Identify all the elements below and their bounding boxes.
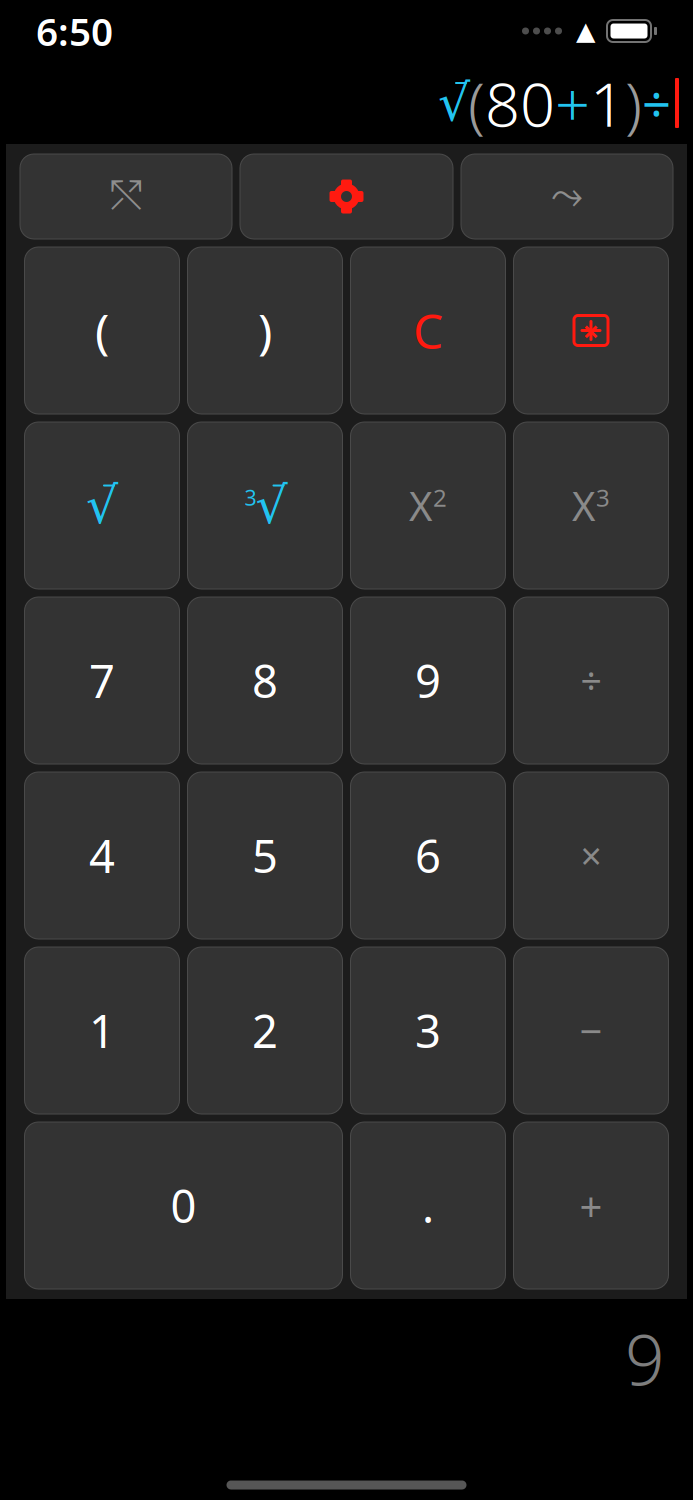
button[interactable]: Clear xyxy=(350,247,505,414)
staticText: ( xyxy=(468,62,485,144)
staticText: 80 xyxy=(485,62,555,144)
staticText: 9 xyxy=(625,1312,665,1405)
staticText: 2 xyxy=(433,482,447,513)
button[interactable]: 1 xyxy=(24,947,179,1114)
staticText: 7 xyxy=(89,650,115,711)
staticText: ÷ xyxy=(642,69,671,137)
button[interactable]: Open parenthesis xyxy=(24,247,179,414)
button[interactable]: 9 xyxy=(350,597,505,764)
button[interactable]: 7 xyxy=(24,597,179,764)
button[interactable]: 4 xyxy=(24,772,179,939)
staticText: 6 xyxy=(415,825,441,886)
staticText: ⤳ xyxy=(551,177,583,216)
button[interactable]: Decimal point xyxy=(350,1122,505,1289)
button[interactable]: Plus xyxy=(513,1122,668,1289)
staticText: . xyxy=(422,1175,434,1236)
button[interactable]: Redo xyxy=(461,154,673,239)
button[interactable]: Square root xyxy=(24,422,179,589)
staticText: 0 xyxy=(170,1175,196,1236)
staticText: 2 xyxy=(252,1000,278,1061)
staticText: 3 xyxy=(596,482,610,513)
staticText: − xyxy=(579,1004,602,1057)
button[interactable]: Minus xyxy=(513,947,668,1114)
button[interactable]: 2 xyxy=(187,947,342,1114)
staticText: ( xyxy=(95,299,109,362)
staticText: √ xyxy=(255,477,287,534)
button[interactable]: Close parenthesis xyxy=(187,247,342,414)
button[interactable]: Divide xyxy=(513,597,668,764)
staticText: + xyxy=(579,1179,602,1232)
staticText: 1 xyxy=(89,1000,115,1061)
staticText: 1 xyxy=(590,62,625,144)
staticText: X xyxy=(409,479,432,532)
button[interactable]: 8 xyxy=(187,597,342,764)
staticText: √ xyxy=(86,477,118,534)
button[interactable]: Delete xyxy=(513,247,668,414)
staticText: 5 xyxy=(252,825,278,886)
staticText: 3 xyxy=(415,1000,441,1061)
staticText: + xyxy=(555,62,590,144)
staticText: 6:50 xyxy=(36,5,113,57)
button[interactable]: X cubed xyxy=(513,422,668,589)
button[interactable]: Multiply xyxy=(513,772,668,939)
button[interactable]: 0 xyxy=(24,1122,342,1289)
staticText: ⤲ xyxy=(110,177,142,216)
staticText: × xyxy=(580,831,601,880)
staticText: X xyxy=(572,479,595,532)
button[interactable]: X squared xyxy=(350,422,505,589)
button[interactable]: Cube root xyxy=(187,422,342,589)
staticText: 4 xyxy=(89,825,115,886)
staticText: × xyxy=(582,311,599,350)
staticText: ) xyxy=(258,299,272,362)
staticText: √ xyxy=(438,74,470,132)
staticText: C xyxy=(413,299,443,362)
staticText: ) xyxy=(625,62,642,144)
button[interactable]: Settings xyxy=(240,154,453,239)
button[interactable]: 3 xyxy=(350,947,505,1114)
staticText: 3 xyxy=(244,483,256,512)
staticText: ▲ xyxy=(576,17,595,45)
staticText: ÷ xyxy=(580,656,601,705)
button[interactable]: 5 xyxy=(187,772,342,939)
staticText: 8 xyxy=(252,650,278,711)
button[interactable]: 6 xyxy=(350,772,505,939)
button[interactable]: Undo xyxy=(20,154,232,239)
staticText: 9 xyxy=(415,650,441,711)
